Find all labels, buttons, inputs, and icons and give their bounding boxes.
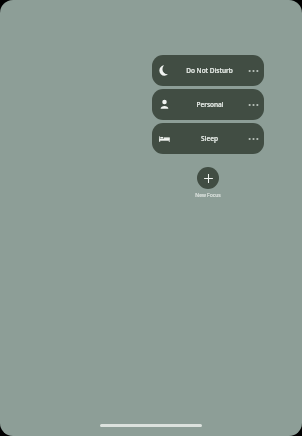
staticText: Sleep (201, 134, 218, 143)
other: New Focus (197, 167, 219, 189)
button[interactable]: New Focus (191, 166, 225, 200)
staticText: Do Not Disturb (186, 66, 233, 75)
staticText: Personal (196, 100, 224, 109)
staticText: New Focus (195, 192, 221, 199)
button[interactable]: More options for Personal (242, 89, 264, 120)
button[interactable]: Personal (152, 89, 264, 120)
button[interactable]: Sleep (152, 123, 264, 154)
button[interactable]: More options for Do Not Disturb (242, 55, 264, 86)
button[interactable]: Do Not Disturb (152, 55, 264, 86)
button[interactable]: More options for Sleep (242, 123, 264, 154)
